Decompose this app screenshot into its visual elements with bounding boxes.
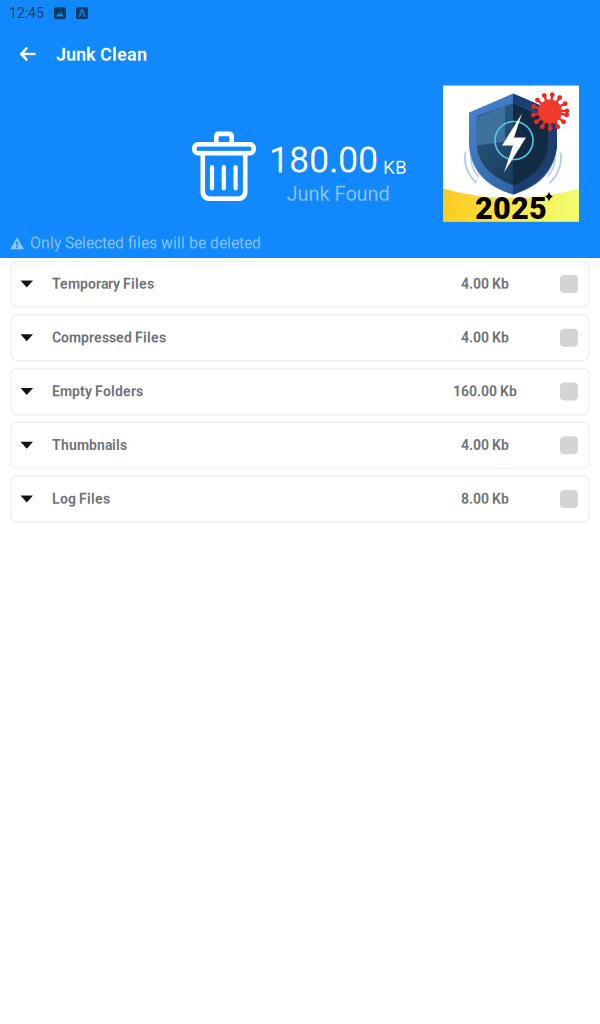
staticText: Log Files <box>52 491 110 507</box>
staticText: 2025 <box>475 190 547 226</box>
staticText: 8.00 Kb <box>461 491 509 507</box>
staticText: 160.00 Kb <box>453 383 517 400</box>
staticText: Only Selected files will be deleted <box>30 234 261 252</box>
staticText: 180.00 <box>269 139 378 181</box>
staticText: Junk Found <box>286 182 389 206</box>
staticText: Compressed Files <box>52 329 166 346</box>
staticText: Thumbnails <box>52 437 127 453</box>
staticText: 4.00 Kb <box>461 437 509 453</box>
staticText: KB <box>383 156 407 178</box>
button[interactable]: Log Files <box>11 476 589 522</box>
staticText: Temporary Files <box>52 276 154 292</box>
staticText: Empty Folders <box>52 383 143 400</box>
button[interactable]: Back <box>0 29 56 79</box>
button[interactable]: Empty Folders <box>11 368 589 414</box>
staticText: Junk Clean <box>56 44 147 65</box>
button[interactable]: Compressed Files <box>11 315 589 361</box>
button[interactable]: Thumbnails <box>11 422 589 468</box>
staticText: 4.00 Kb <box>461 276 509 292</box>
staticText: 4.00 Kb <box>461 329 509 346</box>
staticText: 12:45 <box>9 5 44 21</box>
button[interactable]: Temporary Files <box>11 261 589 307</box>
